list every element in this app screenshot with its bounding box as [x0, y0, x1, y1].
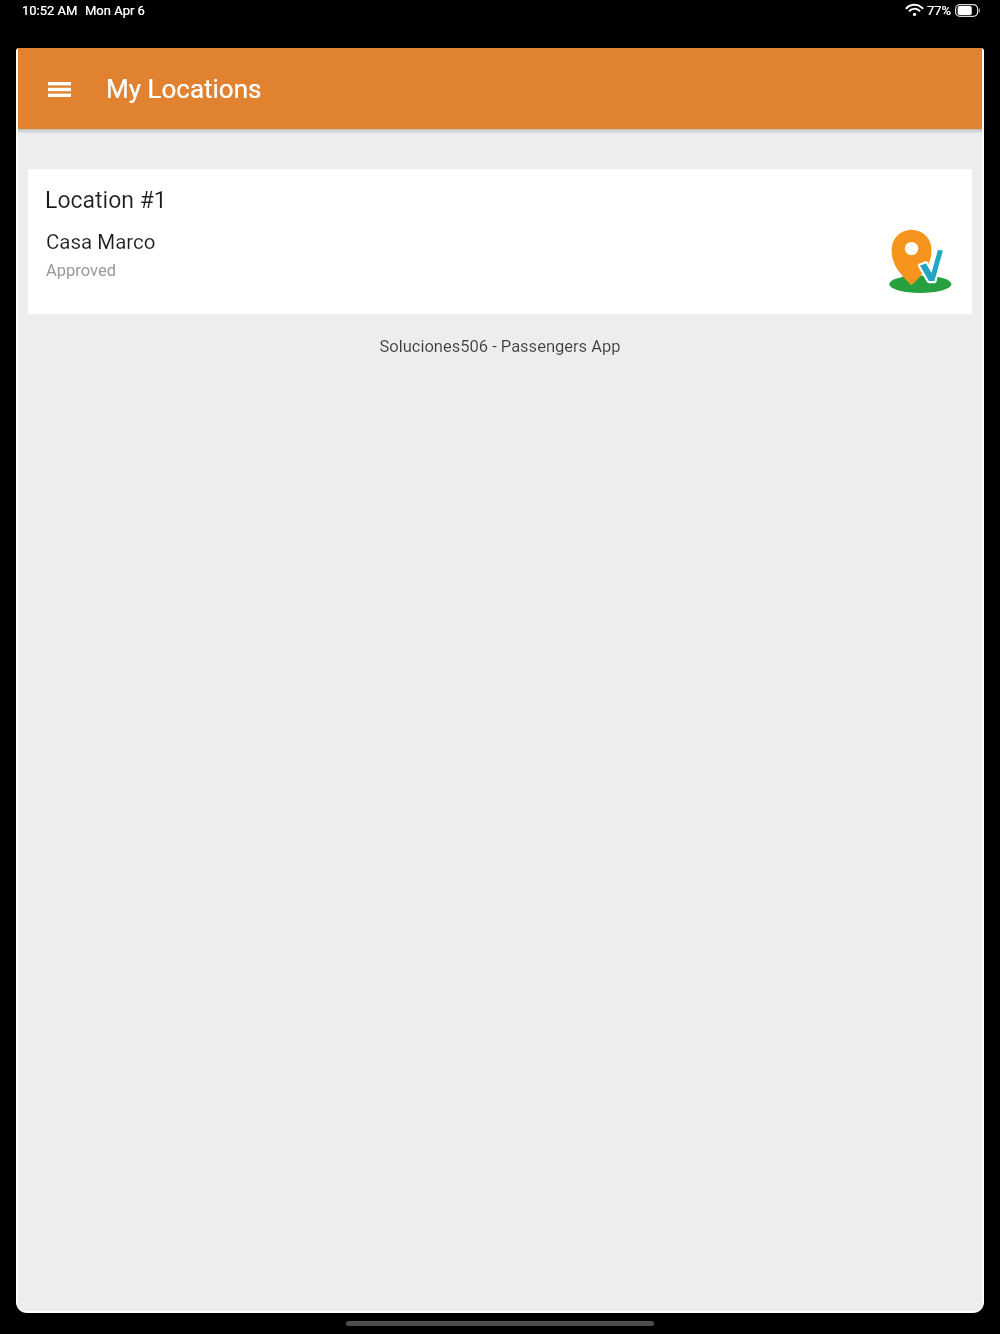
- button[interactable]: Location #1: [28, 169, 972, 314]
- staticText: Soluciones506 - Passengers App: [18, 337, 982, 356]
- staticText: Location #1: [45, 187, 167, 214]
- staticText: 10:52 AM: [22, 3, 78, 18]
- staticText: 77%: [927, 3, 952, 18]
- button[interactable]: Open navigation menu: [31, 61, 87, 117]
- staticText: Approved: [46, 261, 116, 280]
- staticText: Casa Marco: [46, 230, 156, 254]
- staticText: My Locations: [106, 74, 262, 104]
- staticText: Mon Apr 6: [85, 3, 145, 18]
